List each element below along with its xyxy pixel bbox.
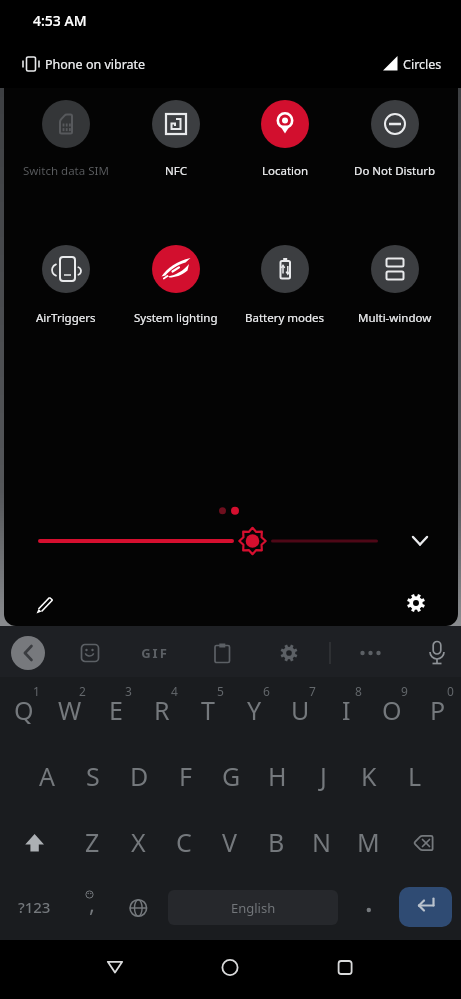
- staticText: K: [361, 759, 377, 793]
- staticText: 7: [309, 683, 316, 699]
- button[interactable]: [391, 874, 460, 940]
- staticText: 8: [355, 683, 362, 699]
- button[interactable]: R: [139, 677, 185, 743]
- button[interactable]: H: [254, 743, 300, 809]
- button[interactable]: [419, 635, 455, 671]
- button[interactable]: S: [70, 743, 116, 809]
- staticText: J: [320, 759, 327, 793]
- button[interactable]: [345, 874, 391, 940]
- staticText: Z: [85, 825, 100, 859]
- staticText: X: [131, 825, 146, 859]
- staticText: 4: [171, 683, 178, 699]
- staticText: Q: [14, 693, 34, 727]
- button[interactable]: L: [392, 743, 438, 809]
- staticText: 9: [401, 683, 408, 699]
- staticText: System lighting: [134, 310, 218, 326]
- staticText: U: [291, 693, 310, 727]
- staticText: 5: [217, 683, 224, 699]
- button[interactable]: Switch data SIM: [11, 100, 121, 179]
- button[interactable]: K: [346, 743, 392, 809]
- staticText: ,: [89, 888, 95, 918]
- staticText: Y: [247, 693, 262, 727]
- button[interactable]: ?123: [0, 874, 69, 940]
- button[interactable]: [11, 636, 45, 670]
- staticText: F: [179, 759, 192, 793]
- staticText: B: [268, 825, 285, 859]
- staticText: 2: [79, 683, 86, 699]
- staticText: AirTriggers: [36, 310, 96, 326]
- button[interactable]: System lighting: [121, 245, 231, 326]
- button[interactable]: [315, 942, 375, 996]
- button[interactable]: Z: [69, 809, 115, 875]
- button[interactable]: [0, 809, 69, 875]
- button[interactable]: [137, 635, 173, 671]
- staticText: I: [342, 693, 351, 727]
- button[interactable]: [85, 942, 145, 996]
- button[interactable]: T: [185, 677, 231, 743]
- staticText: R: [154, 693, 170, 727]
- button[interactable]: Location: [230, 100, 340, 179]
- button[interactable]: M: [345, 809, 391, 875]
- button[interactable]: AirTriggers: [11, 245, 121, 326]
- staticText: Battery modes: [245, 310, 325, 326]
- staticText: H: [268, 759, 287, 793]
- staticText: O: [382, 693, 402, 727]
- button[interactable]: E: [93, 677, 139, 743]
- button[interactable]: [72, 635, 108, 671]
- button[interactable]: V: [207, 809, 253, 875]
- button[interactable]: [391, 809, 460, 875]
- button[interactable]: P: [415, 677, 461, 743]
- button[interactable]: N: [299, 809, 345, 875]
- button[interactable]: English: [161, 874, 345, 940]
- button[interactable]: F: [162, 743, 208, 809]
- staticText: 6: [263, 683, 270, 699]
- button[interactable]: ,: [69, 874, 115, 940]
- button[interactable]: W: [47, 677, 93, 743]
- button[interactable]: [398, 585, 434, 621]
- button[interactable]: Battery modes: [230, 245, 340, 326]
- staticText: T: [201, 693, 215, 727]
- button[interactable]: B: [253, 809, 299, 875]
- staticText: N: [312, 825, 332, 859]
- button[interactable]: [271, 635, 307, 671]
- staticText: 0: [447, 683, 454, 699]
- button[interactable]: Q: [0, 677, 47, 743]
- button[interactable]: Multi-window: [340, 245, 450, 326]
- staticText: 3: [125, 683, 132, 699]
- staticText: P: [430, 693, 446, 727]
- staticText: C: [176, 825, 192, 859]
- staticText: A: [39, 759, 55, 793]
- button[interactable]: O: [369, 677, 415, 743]
- button[interactable]: G: [208, 743, 254, 809]
- button[interactable]: NFC: [121, 100, 231, 179]
- staticText: Switch data SIM: [23, 163, 109, 179]
- staticText: E: [109, 693, 123, 727]
- staticText: 1: [33, 683, 40, 699]
- button[interactable]: [115, 874, 161, 940]
- button[interactable]: A: [23, 743, 70, 809]
- staticText: Circles: [403, 56, 442, 73]
- button[interactable]: [200, 942, 260, 996]
- staticText: 4:53 AM: [33, 11, 87, 30]
- staticText: GIF: [141, 644, 169, 662]
- button[interactable]: [204, 635, 240, 671]
- button[interactable]: [402, 523, 438, 559]
- button[interactable]: D: [116, 743, 162, 809]
- button[interactable]: X: [115, 809, 161, 875]
- staticText: Do Not Disturb: [354, 163, 436, 179]
- staticText: M: [357, 825, 380, 859]
- button[interactable]: [353, 635, 389, 671]
- staticText: Multi-window: [358, 310, 432, 326]
- staticText: G: [222, 759, 241, 793]
- button[interactable]: U: [277, 677, 323, 743]
- button[interactable]: I: [323, 677, 369, 743]
- staticText: Phone on vibrate: [45, 56, 146, 73]
- button[interactable]: Do Not Disturb: [340, 100, 450, 179]
- staticText: W: [58, 693, 82, 727]
- button[interactable]: Y: [231, 677, 277, 743]
- button[interactable]: C: [161, 809, 207, 875]
- staticText: Location: [262, 163, 309, 179]
- button[interactable]: J: [300, 743, 346, 809]
- button[interactable]: [26, 585, 62, 621]
- staticText: D: [130, 759, 149, 793]
